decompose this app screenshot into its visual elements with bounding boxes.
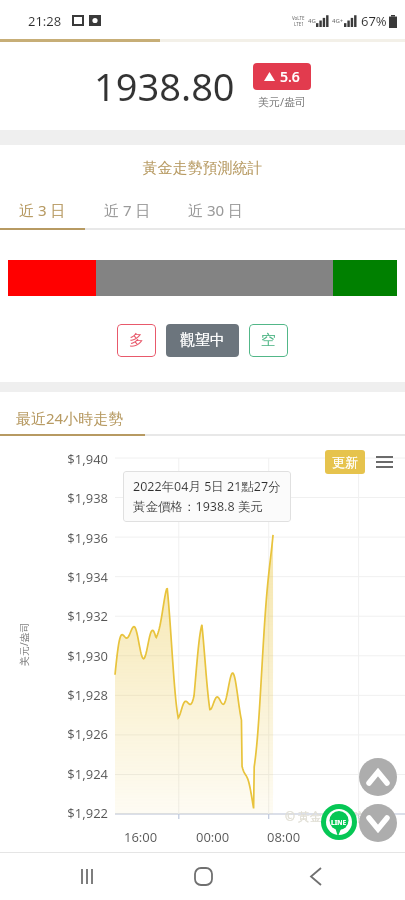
staticText: $1,926 — [0, 725, 108, 743]
staticText: 近 30 日 — [188, 200, 243, 220]
staticText: 黃金走勢預測統計 — [0, 159, 405, 178]
button[interactable]: Scroll down — [359, 804, 397, 842]
button[interactable]: 空 — [249, 324, 288, 357]
staticText: 更新 — [332, 454, 358, 470]
staticText: 近 3 日 — [19, 200, 66, 220]
staticText: VoLTE — [292, 15, 305, 21]
staticText: $1,928 — [0, 686, 108, 704]
button[interactable]: Recents — [65, 852, 113, 900]
staticText: 多 — [129, 331, 144, 350]
button[interactable]: Menu — [373, 451, 395, 473]
staticText: 最近24小時走勢 — [16, 408, 124, 428]
button[interactable]: Scroll up — [359, 758, 397, 796]
button[interactable]: 觀望中 — [166, 324, 239, 357]
staticText: $1,924 — [0, 765, 108, 783]
staticText: $1,936 — [0, 529, 108, 547]
staticText: 4G+ — [332, 17, 344, 25]
staticText: 1938.80 — [94, 60, 235, 112]
staticText: 近 7 日 — [104, 200, 151, 220]
button[interactable]: 多 — [117, 324, 156, 357]
staticText: 2022年04月 5日 21點27分 — [133, 478, 281, 495]
staticText: 美元/盎司 — [17, 622, 31, 666]
button[interactable]: 近 30 日 — [169, 192, 261, 228]
button[interactable]: 更新 — [325, 450, 365, 474]
button[interactable]: LINE — [321, 804, 357, 840]
staticText: $1,940 — [0, 450, 108, 468]
staticText: 08:00 — [267, 828, 301, 846]
staticText: $1,934 — [0, 568, 108, 586]
staticText: 黃金價格：1938.8 美元 — [133, 498, 263, 515]
staticText: 空 — [261, 331, 276, 350]
button[interactable]: Back — [292, 852, 340, 900]
staticText: 觀望中 — [180, 331, 225, 350]
button[interactable]: Home — [179, 852, 227, 900]
staticText: LTE1 — [294, 21, 304, 27]
staticText: 4G — [308, 17, 316, 25]
staticText: $1,938 — [0, 489, 108, 507]
staticText: $1,930 — [0, 647, 108, 665]
staticText: © 黃金投資資訊站 — [285, 808, 383, 824]
staticText: 美元/盎司 — [258, 94, 307, 109]
staticText: $1,922 — [0, 804, 108, 822]
staticText: LINE — [331, 818, 347, 827]
staticText: 5.6 — [280, 67, 300, 86]
staticText: 16:00 — [124, 828, 158, 846]
staticText: 21:28 — [28, 12, 62, 30]
staticText: 00:00 — [196, 828, 230, 846]
staticText: $1,932 — [0, 607, 108, 625]
button[interactable]: 近 7 日 — [85, 192, 169, 228]
staticText: 67% — [361, 12, 387, 30]
button[interactable]: 近 3 日 — [0, 192, 85, 228]
